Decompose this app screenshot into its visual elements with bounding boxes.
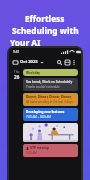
staticText: Your AI Scheduler: [10, 37, 80, 48]
staticText: Dinner, Dinner, Dinner, Dinner, Dinn...: [26, 95, 75, 99]
button[interactable]: Event illustration: [23, 123, 78, 142]
staticText: Effortless: [25, 13, 65, 24]
button[interactable]: Search: [55, 58, 63, 66]
button[interactable]: Oct 2023: [13, 58, 44, 66]
staticText: Developing new features: [26, 110, 65, 114]
staticText: All tasks pending in the last 3 days: [26, 100, 73, 104]
staticText: 26: [14, 74, 20, 80]
button[interactable]: Tea break, Work on Schedulefy dem...: [23, 78, 78, 91]
staticText: UTP meetup: [30, 146, 49, 150]
button[interactable]: Workday: [23, 69, 78, 76]
button[interactable]: View options: [63, 58, 71, 66]
staticText: Thu: [14, 70, 20, 74]
staticText: Pranks couldn't schedule: [26, 85, 60, 89]
button[interactable]: More options: [71, 59, 77, 65]
button[interactable]: UTP meetup: [23, 144, 78, 157]
staticText: 7:00 AM – 8:00 AM: [26, 115, 51, 119]
staticText: Workday: [26, 71, 41, 75]
button[interactable]: Developing new features: [23, 108, 78, 121]
staticText: Oct 2023: [20, 59, 38, 65]
button[interactable]: Dinner, Dinner, Dinner, Dinner, Dinn...: [23, 93, 78, 106]
staticText: Tea break, Work on Schedulefy dem...: [26, 80, 75, 84]
staticText: 9:41: [13, 50, 20, 54]
staticText: 9:30 AM: [26, 151, 37, 155]
staticText: Scheduling with: [12, 25, 79, 36]
